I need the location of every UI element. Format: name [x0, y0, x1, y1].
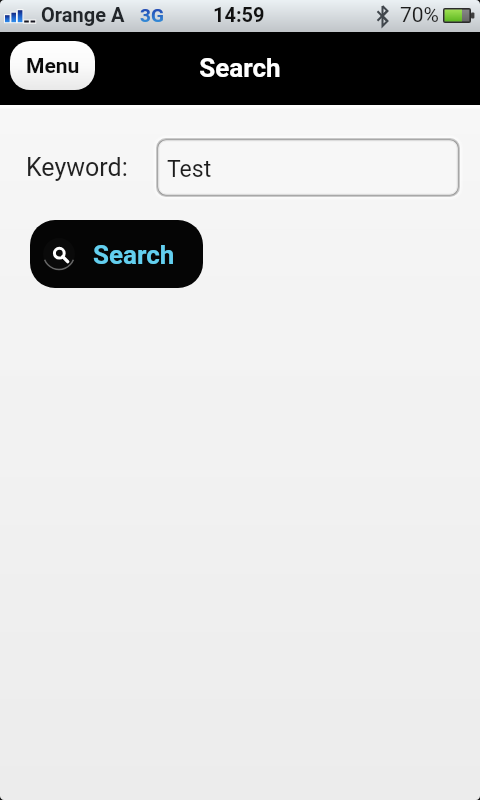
staticText: Search: [93, 240, 175, 270]
staticText: Keyword:: [26, 153, 128, 182]
staticText: Menu: [26, 54, 80, 79]
button[interactable]: Menu: [10, 41, 95, 90]
staticText: 3G: [140, 4, 164, 26]
staticText: 70%: [400, 3, 439, 28]
staticText: 14:59: [213, 3, 265, 26]
staticText: Search: [199, 53, 281, 83]
button[interactable]: Search: [30, 220, 203, 288]
staticText: Test: [167, 156, 212, 183]
staticText: Orange A: [41, 3, 125, 26]
